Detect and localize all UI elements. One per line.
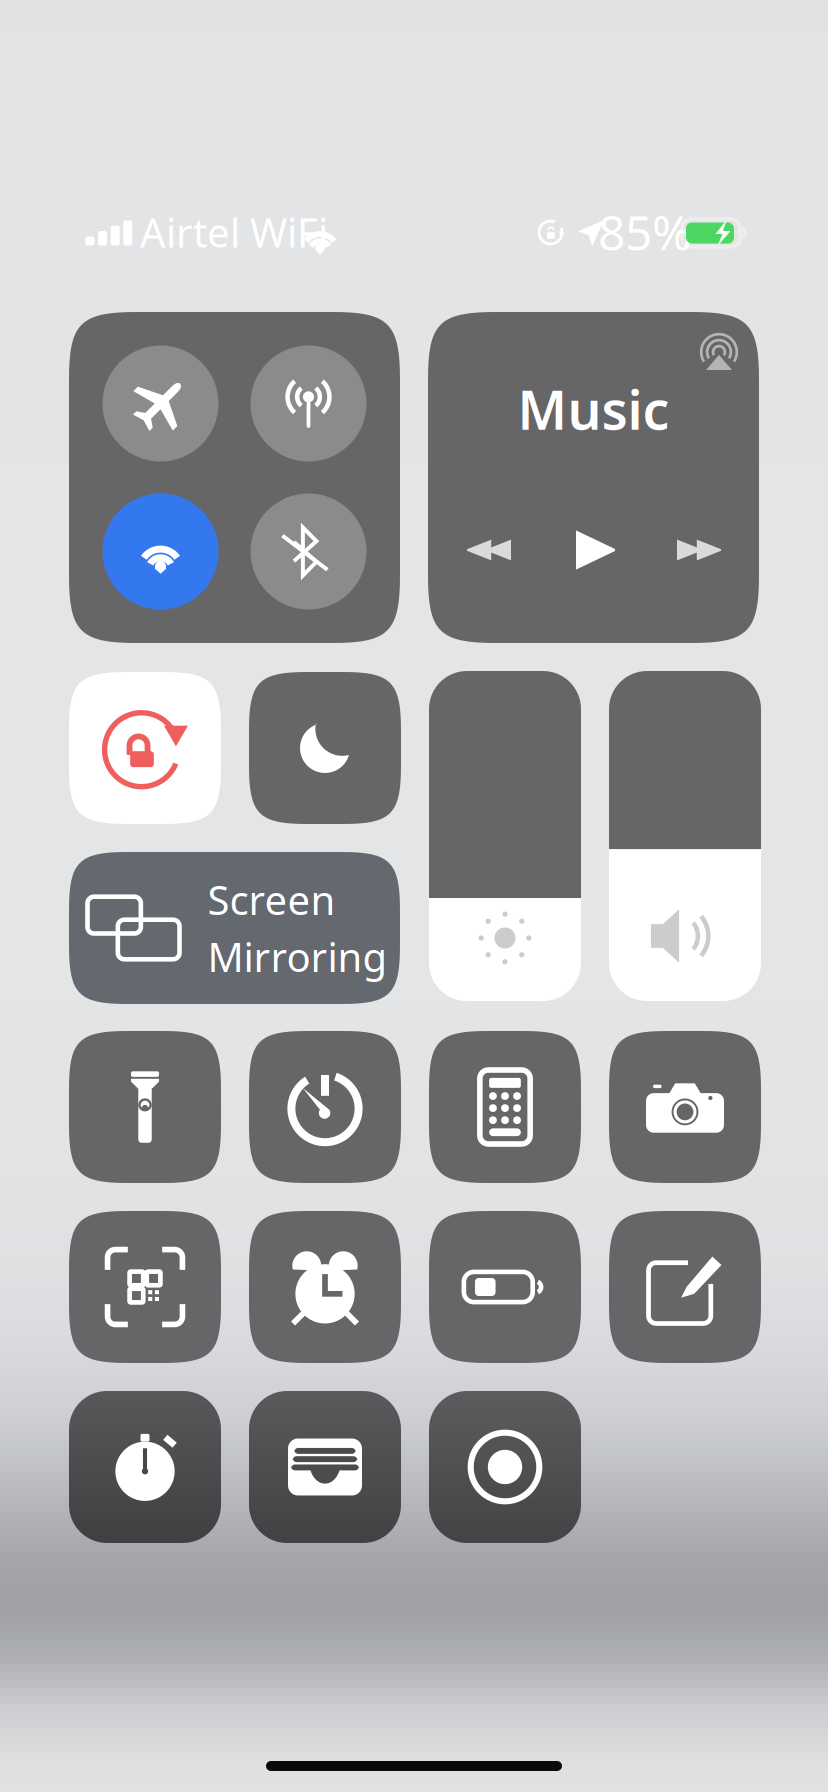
button[interactable]: Airplane Mode xyxy=(102,345,218,461)
staticText: Music xyxy=(517,374,669,444)
button[interactable]: Scan QR Code xyxy=(69,1211,221,1363)
button[interactable]: Timer xyxy=(249,1031,401,1183)
staticText: Screen xyxy=(207,873,335,926)
button[interactable]: Rotation Lock xyxy=(69,672,221,824)
staticText: 85% xyxy=(598,200,692,264)
button[interactable]: Do Not Disturb xyxy=(249,672,401,824)
button[interactable]: Music xyxy=(428,312,759,643)
staticText: Airtel WiFi xyxy=(140,205,328,258)
button[interactable]: Wallet xyxy=(249,1391,401,1543)
button[interactable]: Flashlight xyxy=(69,1031,221,1183)
button[interactable]: Wi-Fi xyxy=(102,493,218,609)
button[interactable]: Screen Recording xyxy=(429,1391,581,1543)
button[interactable]: Brightness xyxy=(429,671,581,1001)
button[interactable]: Alarm xyxy=(249,1211,401,1363)
button[interactable]: Cellular Data xyxy=(250,345,366,461)
staticText: Mirroring xyxy=(207,930,387,983)
button[interactable]: Bluetooth xyxy=(250,493,366,609)
button[interactable]: Camera xyxy=(609,1031,761,1183)
button[interactable]: Stopwatch xyxy=(69,1391,221,1543)
button[interactable]: Calculator xyxy=(429,1031,581,1183)
button[interactable]: Volume xyxy=(609,671,761,1001)
button[interactable]: Low Power Mode xyxy=(429,1211,581,1363)
button[interactable]: Notes xyxy=(609,1211,761,1363)
button[interactable]: Screen Mirroring xyxy=(69,852,400,1004)
